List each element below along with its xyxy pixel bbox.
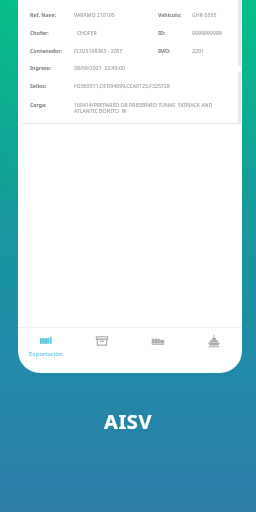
button[interactable]: Nave [186,327,242,373]
staticText: ID: [158,29,166,36]
button[interactable]: Almacén [74,327,130,373]
staticText: 160414/PREPARED OR PRESERVED TUNAS SKIPJ… [74,101,232,115]
staticText: 28/09/2021 22:45:00 [74,64,125,71]
staticText: Chofer: [30,29,49,36]
button[interactable]: Transporte [130,327,186,373]
staticText: H2365511,DFD94099,CCA0125,F325728 [74,82,170,89]
staticText: Ref. Nave: [30,11,57,18]
staticText: FCIU5168363 - 20ST [74,47,123,54]
staticText: 9999999999 [192,29,222,36]
staticText: CHOFER [74,29,97,36]
staticText: Vehiculo: [158,11,182,18]
staticText: GHR-5555 [192,11,217,18]
staticText: 2201 [192,47,204,54]
staticText: Carga: [30,101,47,108]
staticText: VARAMO 21019S [74,11,115,18]
staticText: IMO: [158,47,171,54]
staticText: Ingreso: [30,64,52,71]
staticText: AISV [104,408,153,435]
button[interactable]: Exportación [18,327,74,373]
staticText: Contenedor: [30,47,63,54]
staticText: Sellos: [30,82,47,89]
staticText: Exportación [29,350,63,358]
